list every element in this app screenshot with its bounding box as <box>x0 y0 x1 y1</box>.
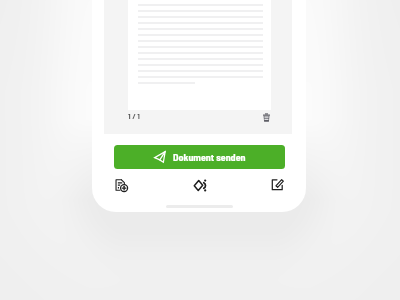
staticText: Dokument senden <box>173 151 246 163</box>
button[interactable]: Dokument senden <box>114 145 285 169</box>
staticText: 1 / 1 <box>128 111 140 121</box>
button[interactable]: Add document <box>110 174 132 196</box>
button[interactable]: Sign document <box>189 174 211 196</box>
button[interactable]: Edit document <box>266 173 288 195</box>
button[interactable]: Delete page <box>256 107 277 128</box>
